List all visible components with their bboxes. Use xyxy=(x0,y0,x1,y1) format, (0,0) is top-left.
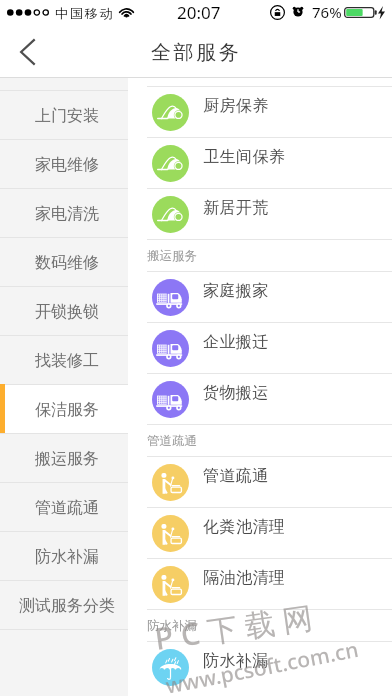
button[interactable]: Back xyxy=(0,26,52,78)
button[interactable]: 家庭搬家 xyxy=(128,272,392,322)
staticText: P C 下 载 网 xyxy=(152,596,315,659)
staticText: 企业搬迁 xyxy=(203,332,269,352)
staticText: 家庭搬家 xyxy=(203,281,269,301)
staticText: 保洁服务 xyxy=(35,400,99,420)
button[interactable]: 企业搬迁 xyxy=(128,323,392,373)
button[interactable]: 家电清洗 xyxy=(0,188,128,237)
staticText: 搬运服务 xyxy=(35,449,99,469)
staticText: 中国移动 xyxy=(55,5,115,21)
staticText: 化粪池清理 xyxy=(203,517,285,537)
button[interactable]: 找装修工 xyxy=(0,335,128,384)
staticText: 20:07 xyxy=(177,1,221,24)
staticText: 管道疏通 xyxy=(203,466,269,486)
staticText: 家电维修 xyxy=(35,155,99,175)
staticText: 新居开荒 xyxy=(203,198,269,218)
staticText: 货物搬运 xyxy=(203,383,269,403)
staticText: 搬运服务 xyxy=(147,248,197,264)
staticText: 数码维修 xyxy=(35,253,99,273)
button[interactable]: 隔油池清理 xyxy=(128,559,392,609)
button[interactable]: 厨房保养 xyxy=(128,87,392,137)
staticText: 管道疏通 xyxy=(35,498,99,518)
staticText: 防水补漏 xyxy=(35,547,99,567)
button[interactable]: 货物搬运 xyxy=(128,374,392,424)
staticText: 隔油池清理 xyxy=(203,568,285,588)
button[interactable]: 开锁换锁 xyxy=(0,286,128,335)
button[interactable]: 家电维修 xyxy=(0,139,128,188)
staticText: 测试服务分类 xyxy=(19,596,115,616)
button[interactable]: 测试服务分类 xyxy=(0,580,128,629)
button[interactable]: 防水补漏 xyxy=(0,531,128,580)
button[interactable]: 管道疏通 xyxy=(128,457,392,507)
button[interactable]: 管道疏通 xyxy=(0,482,128,531)
staticText: 卫生间保养 xyxy=(203,147,285,167)
button[interactable]: 数码维修 xyxy=(0,237,128,286)
button[interactable]: 防水补漏 xyxy=(128,642,392,692)
button[interactable]: 上门安装 xyxy=(0,90,128,139)
staticText: 厨房保养 xyxy=(203,96,269,116)
staticText: 上门安装 xyxy=(35,106,99,126)
button[interactable]: 保洁服务 xyxy=(0,384,128,433)
staticText: 全部服务 xyxy=(151,40,242,65)
staticText: 开锁换锁 xyxy=(35,302,99,322)
staticText: 找装修工 xyxy=(35,351,99,371)
button[interactable]: 化粪池清理 xyxy=(128,508,392,558)
button[interactable]: 搬运服务 xyxy=(0,433,128,482)
staticText: 防水补漏 xyxy=(203,651,269,671)
staticText: 管道疏通 xyxy=(147,433,197,449)
button[interactable]: 新居开荒 xyxy=(128,189,392,239)
staticText: 防水补漏 xyxy=(147,618,197,634)
staticText: www.pcsoft.com.cn xyxy=(163,635,361,696)
staticText: 家电清洗 xyxy=(35,204,99,224)
staticText: 76% xyxy=(312,2,342,22)
button[interactable]: 卫生间保养 xyxy=(128,138,392,188)
